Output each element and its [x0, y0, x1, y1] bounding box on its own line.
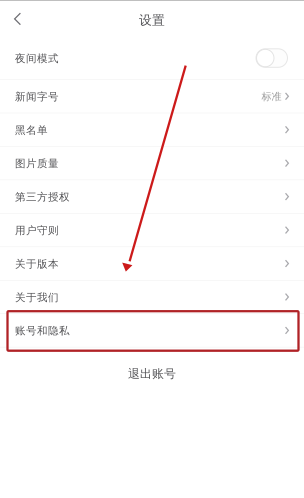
button[interactable]: Night mode: [256, 49, 287, 67]
staticText: 第三方授权: [15, 190, 70, 204]
button[interactable]: 关于版本: [0, 247, 304, 280]
staticText: 关于我们: [15, 291, 59, 304]
button[interactable]: 账号和隐私: [0, 314, 304, 347]
button[interactable]: 关于我们: [0, 280, 304, 314]
button[interactable]: 退出账号: [0, 347, 304, 399]
staticText: 设置: [139, 12, 165, 28]
staticText: 关于版本: [15, 257, 59, 271]
button[interactable]: 图片质量: [0, 147, 304, 180]
staticText: 新闻字号: [15, 90, 59, 103]
button[interactable]: 用户守则: [0, 214, 304, 247]
button[interactable]: 新闻字号: [0, 80, 304, 113]
button[interactable]: 黑名单: [0, 113, 304, 147]
staticText: 夜间模式: [15, 52, 59, 65]
staticText: 图片质量: [15, 157, 59, 170]
button[interactable]: Back: [0, 1, 35, 37]
staticText: 用户守则: [15, 224, 59, 237]
staticText: 账号和隐私: [15, 324, 70, 337]
staticText: 黑名单: [15, 123, 48, 137]
staticText: 标准: [261, 90, 281, 103]
staticText: 退出账号: [128, 366, 176, 381]
button[interactable]: 第三方授权: [0, 180, 304, 214]
